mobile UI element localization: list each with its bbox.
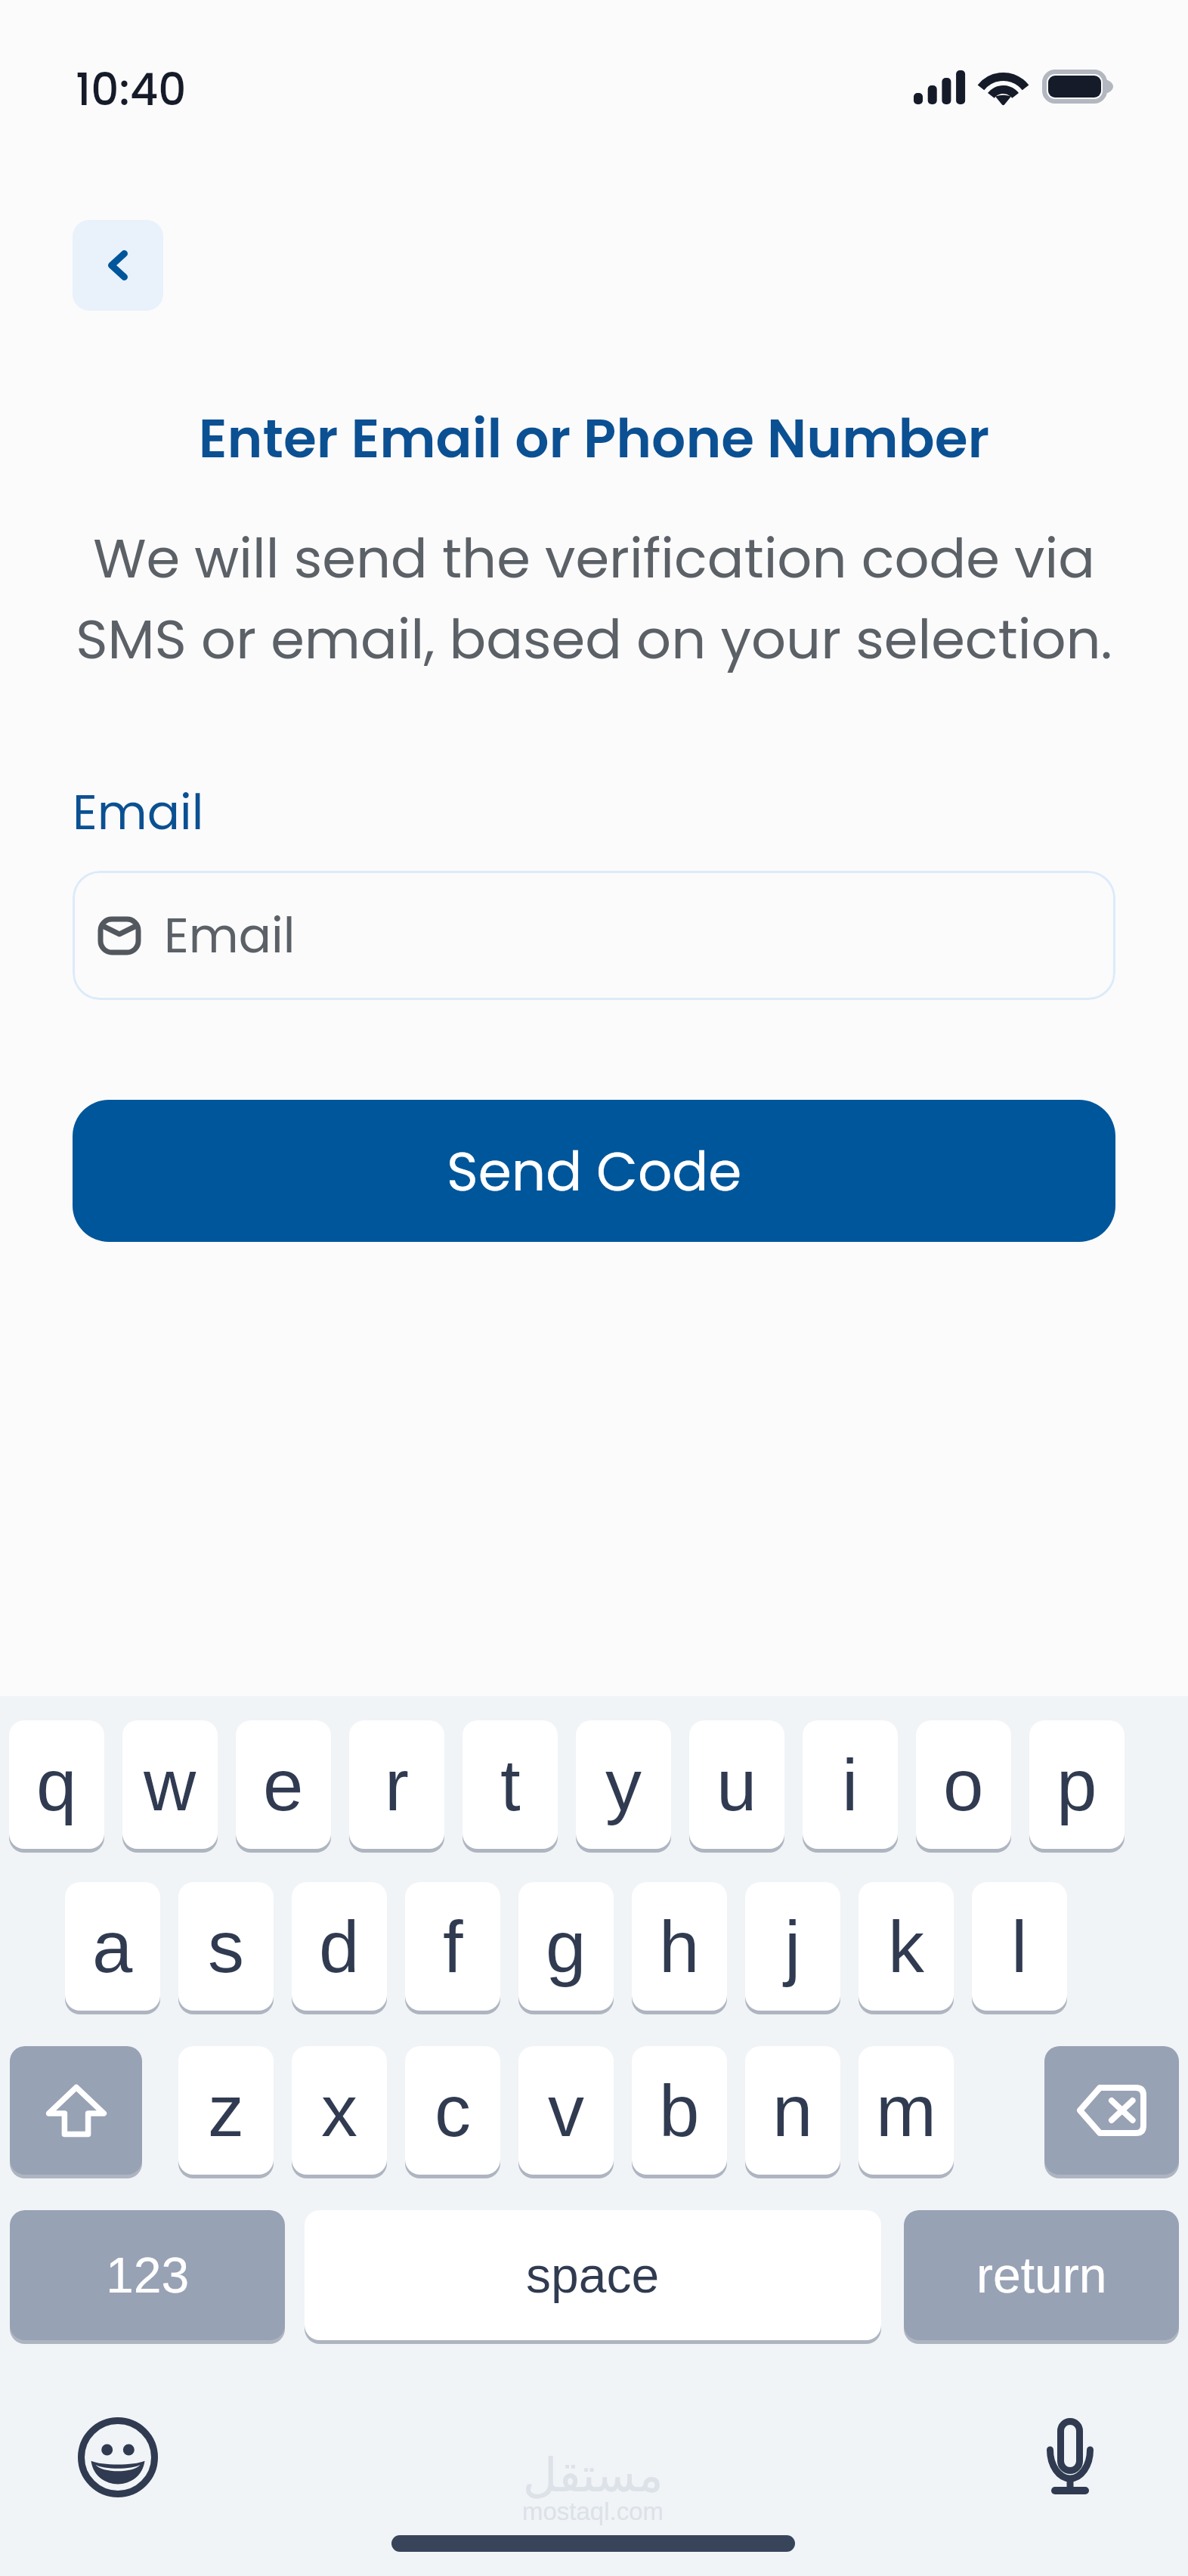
staticText: 10:40 (76, 59, 187, 120)
button[interactable]: u (689, 1720, 784, 1849)
staticText: q (36, 1745, 77, 1825)
button[interactable]: o (916, 1720, 1011, 1849)
staticText: r (385, 1745, 409, 1825)
button[interactable]: h (632, 1882, 727, 2011)
button[interactable]: y (576, 1720, 671, 1849)
button[interactable]: p (1029, 1720, 1125, 1849)
button[interactable]: s (178, 1882, 274, 2011)
button[interactable]: k (859, 1882, 954, 2011)
button[interactable]: g (518, 1882, 614, 2011)
staticText: Send Code (447, 1134, 742, 1209)
staticText: v (548, 2070, 584, 2151)
staticText: return (976, 2247, 1107, 2303)
staticText: space (526, 2247, 660, 2303)
staticText: s (208, 1906, 244, 1987)
staticText: مستقل (523, 2448, 664, 2502)
staticText: i (842, 1745, 859, 1825)
staticText: mostaql.com (522, 2497, 664, 2525)
button[interactable]: r (349, 1720, 444, 1849)
staticText: We will send the verification code via S… (42, 520, 1146, 677)
staticText: p (1057, 1745, 1097, 1825)
button[interactable]: Backspace (1044, 2046, 1179, 2175)
button[interactable]: Email (73, 871, 1115, 1000)
staticText: k (888, 1906, 924, 1987)
button[interactable]: b (632, 2046, 727, 2175)
staticText: f (443, 1906, 463, 1987)
staticText: Email (164, 902, 295, 970)
button[interactable]: m (859, 2046, 954, 2175)
staticText: h (659, 1906, 700, 1987)
button[interactable]: Back (73, 220, 163, 311)
staticText: m (876, 2070, 936, 2151)
staticText: z (208, 2070, 244, 2151)
staticText: g (546, 1906, 586, 1987)
staticText: u (716, 1745, 757, 1825)
button[interactable]: z (178, 2046, 274, 2175)
staticText: j (784, 1906, 801, 1987)
button[interactable]: q (9, 1720, 104, 1849)
staticText: a (92, 1906, 133, 1987)
staticText: o (943, 1745, 984, 1825)
button[interactable]: n (745, 2046, 840, 2175)
staticText: b (659, 2070, 700, 2151)
button[interactable]: w (122, 1720, 218, 1849)
button[interactable]: Emoji keyboard (78, 2417, 158, 2497)
staticText: Enter Email or Phone Number (0, 401, 1188, 475)
button[interactable]: a (65, 1882, 160, 2011)
button[interactable]: l (972, 1882, 1067, 2011)
staticText: c (435, 2070, 471, 2151)
staticText: e (263, 1745, 304, 1825)
button[interactable]: 123 (10, 2210, 285, 2340)
button[interactable]: c (405, 2046, 500, 2175)
button[interactable]: t (463, 1720, 558, 1849)
button[interactable]: Voice input (1047, 2418, 1094, 2494)
button[interactable]: return (904, 2210, 1179, 2340)
staticText: n (772, 2070, 813, 2151)
button[interactable]: e (236, 1720, 331, 1849)
button[interactable]: Shift (10, 2046, 142, 2175)
button[interactable]: f (405, 1882, 500, 2011)
staticText: d (319, 1906, 360, 1987)
staticText: 123 (106, 2247, 190, 2303)
staticText: w (144, 1745, 196, 1825)
staticText: l (1011, 1906, 1028, 1987)
staticText: t (500, 1745, 521, 1825)
staticText: x (321, 2070, 357, 2151)
button[interactable]: i (803, 1720, 898, 1849)
button[interactable]: v (518, 2046, 614, 2175)
button[interactable]: space (305, 2210, 881, 2340)
button[interactable]: j (745, 1882, 840, 2011)
button[interactable]: Send Code (73, 1100, 1115, 1242)
button[interactable]: x (292, 2046, 387, 2175)
staticText: y (605, 1745, 642, 1825)
staticText: Email (73, 779, 204, 847)
button[interactable]: d (292, 1882, 387, 2011)
